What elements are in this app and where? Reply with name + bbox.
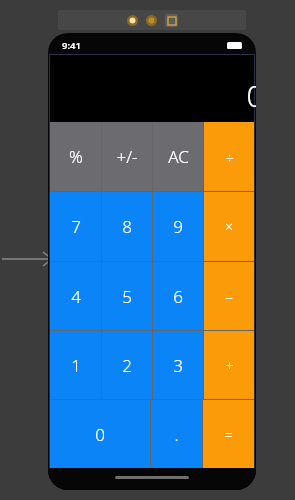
staticText: 9:41 [62,39,81,52]
button[interactable]: 6 [153,262,203,330]
button[interactable]: 1 [50,331,101,399]
button[interactable]: 2 [102,331,152,399]
button[interactable]: % [50,122,101,191]
staticText: ÷ [225,147,234,167]
button[interactable]: ÷ [204,122,254,191]
staticText: 1 [71,354,81,377]
button[interactable]: AC [153,122,203,191]
staticText: % [69,145,83,168]
button[interactable]: 8 [102,192,152,261]
staticText: 8 [122,215,132,238]
staticText: + [225,355,234,375]
button[interactable]: × [204,192,254,261]
button[interactable]: – [204,262,254,330]
staticText: 4 [71,285,81,308]
staticText: 0 [246,75,256,116]
button[interactable]: Layout inspector [165,14,178,27]
staticText: 5 [122,285,132,308]
staticText: . [174,423,179,446]
staticText: 0 [95,423,105,446]
button[interactable]: = [203,400,254,468]
staticText: × [225,217,233,236]
button[interactable]: Record [127,15,138,26]
staticText: AC [168,145,189,168]
button[interactable]: 9 [153,192,203,261]
button[interactable]: Capture [146,15,157,26]
staticText: = [224,424,233,444]
button[interactable]: 4 [50,262,101,330]
button[interactable]: + [204,331,254,399]
staticText: 6 [173,285,183,308]
staticText: 9 [173,215,183,238]
staticText: – [225,286,233,306]
button[interactable]: 5 [102,262,152,330]
button[interactable]: . [151,400,202,468]
button[interactable]: 7 [50,192,101,261]
staticText: +/- [116,145,138,168]
staticText: 2 [122,354,132,377]
staticText: 3 [173,354,183,377]
button[interactable]: +/- [102,122,152,191]
button[interactable]: 3 [153,331,203,399]
staticText: 7 [71,215,81,238]
button[interactable]: 0 [50,400,150,468]
